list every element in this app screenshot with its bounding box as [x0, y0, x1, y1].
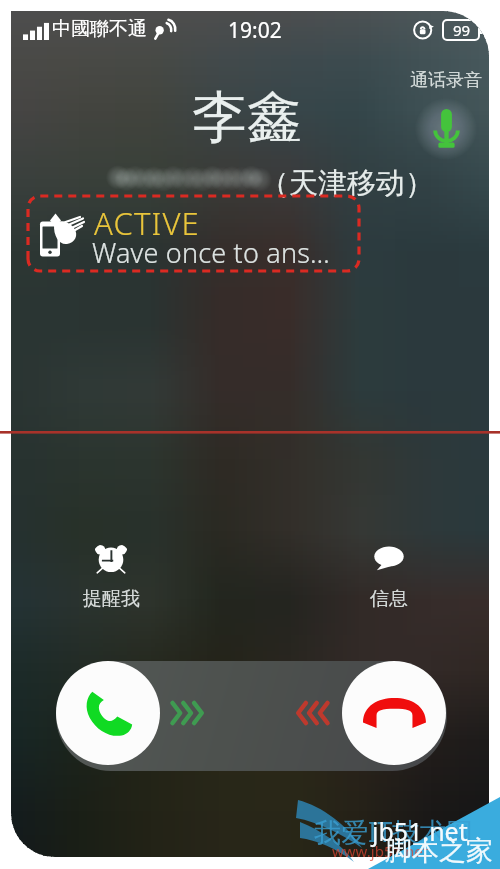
staticText: （天津移动）: [260, 165, 434, 202]
staticText: Wave once to ans…: [92, 234, 331, 271]
staticText: 我爱IT技术网: [314, 813, 474, 850]
staticText: jb51.net: [372, 814, 468, 848]
button[interactable]: Call recording: [399, 69, 489, 171]
button[interactable]: Message: [344, 542, 434, 617]
staticText: 中國聯不通: [52, 17, 147, 41]
staticText: 信息: [370, 587, 408, 611]
staticText: 99: [453, 20, 471, 40]
staticText: www.jb51.net: [332, 841, 429, 861]
staticText: 提醒我: [83, 587, 140, 611]
button[interactable]: Remind me: [66, 542, 156, 617]
staticText: ACTIVE: [94, 202, 200, 244]
button[interactable]: ACTIVE: [28, 196, 359, 271]
staticText: 通话录音: [410, 69, 482, 92]
staticText: 19:02: [228, 16, 282, 45]
button[interactable]: Decline call: [342, 661, 446, 765]
button[interactable]: Answer call: [56, 661, 160, 765]
staticText: 脚本之家: [385, 834, 493, 868]
staticText: 李鑫: [192, 83, 302, 152]
